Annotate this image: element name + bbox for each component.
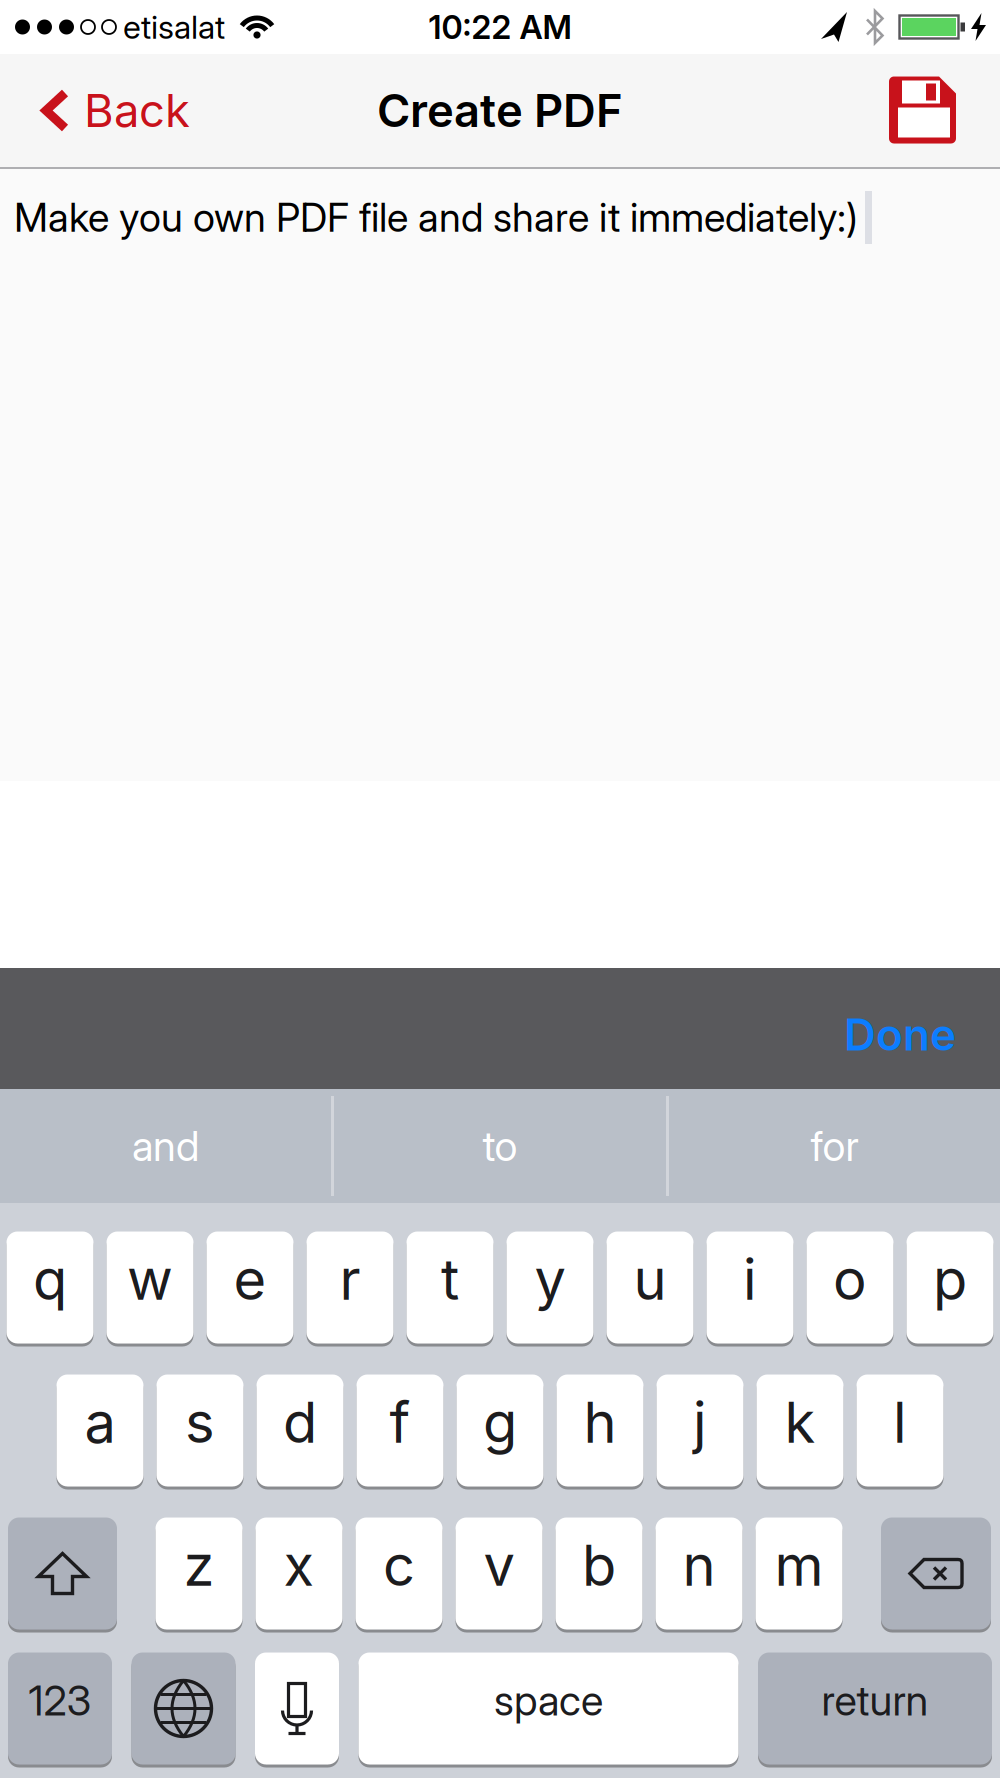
button[interactable]: Shift <box>8 1516 117 1631</box>
button[interactable]: l <box>856 1373 943 1488</box>
button[interactable]: to <box>334 1089 666 1203</box>
button[interactable]: v <box>455 1516 542 1631</box>
button[interactable]: b <box>555 1516 642 1631</box>
button[interactable]: m <box>755 1516 842 1631</box>
button[interactable]: a <box>56 1373 143 1488</box>
button[interactable]: k <box>756 1373 843 1488</box>
button[interactable]: r <box>306 1230 393 1345</box>
button[interactable]: u <box>606 1230 693 1345</box>
button[interactable]: p <box>906 1230 993 1345</box>
staticText: w <box>127 1246 173 1313</box>
staticText: t <box>441 1246 459 1313</box>
staticText: q <box>33 1246 67 1313</box>
staticText: space <box>494 1675 603 1725</box>
staticText: m <box>774 1532 823 1599</box>
button[interactable]: for <box>669 1089 1000 1203</box>
staticText: and <box>132 1121 199 1171</box>
staticText: y <box>534 1246 565 1313</box>
button[interactable]: j <box>656 1373 743 1488</box>
staticText: b <box>582 1532 616 1599</box>
button[interactable]: w <box>106 1230 193 1345</box>
staticText: j <box>693 1389 707 1456</box>
button[interactable]: Next keyboard <box>131 1651 235 1766</box>
staticText: e <box>233 1246 266 1313</box>
button[interactable]: y <box>506 1230 593 1345</box>
staticText: z <box>183 1532 214 1599</box>
button[interactable]: z <box>155 1516 242 1631</box>
staticText: Back <box>84 83 190 138</box>
button[interactable]: d <box>256 1373 343 1488</box>
staticText: k <box>784 1389 815 1456</box>
button[interactable]: Numbers <box>8 1651 112 1766</box>
staticText: etisalat <box>123 8 225 46</box>
staticText: return <box>821 1675 928 1725</box>
button[interactable]: space <box>358 1651 738 1766</box>
staticText: f <box>389 1389 410 1456</box>
button[interactable]: and <box>0 1089 331 1203</box>
button[interactable]: g <box>456 1373 543 1488</box>
staticText: 123 <box>28 1675 91 1725</box>
staticText: u <box>633 1246 666 1313</box>
staticText: r <box>339 1246 360 1313</box>
button[interactable]: e <box>206 1230 293 1345</box>
button[interactable]: Back <box>0 83 190 138</box>
button[interactable]: x <box>255 1516 342 1631</box>
button[interactable]: c <box>355 1516 442 1631</box>
button[interactable]: h <box>556 1373 643 1488</box>
staticText: Create PDF <box>377 83 623 138</box>
button[interactable]: return <box>758 1651 992 1766</box>
staticText: a <box>84 1389 115 1456</box>
button[interactable]: q <box>6 1230 93 1345</box>
staticText: Done <box>844 1008 956 1061</box>
staticText: to <box>482 1121 517 1171</box>
button[interactable]: Done <box>844 1002 1000 1055</box>
staticText: l <box>893 1389 907 1456</box>
button[interactable]: i <box>706 1230 793 1345</box>
staticText: h <box>583 1389 616 1456</box>
staticText: 10:22 AM <box>428 7 571 47</box>
button[interactable]: Save <box>889 76 1000 144</box>
staticText: g <box>483 1389 517 1456</box>
staticText: d <box>283 1389 317 1456</box>
button[interactable]: t <box>406 1230 493 1345</box>
button[interactable]: s <box>156 1373 243 1488</box>
button[interactable]: f <box>356 1373 443 1488</box>
button[interactable]: n <box>655 1516 742 1631</box>
staticText: x <box>283 1532 314 1599</box>
staticText: Make you own PDF file and share it immed… <box>14 194 858 241</box>
staticText: for <box>810 1121 858 1171</box>
staticText: i <box>743 1246 757 1313</box>
staticText: v <box>483 1532 514 1599</box>
staticText: c <box>383 1532 415 1599</box>
staticText: s <box>185 1389 215 1456</box>
staticText: p <box>933 1246 967 1313</box>
button[interactable]: Dictate <box>255 1651 339 1766</box>
staticText: n <box>682 1532 715 1599</box>
button[interactable]: Delete <box>881 1516 991 1631</box>
button[interactable]: o <box>806 1230 893 1345</box>
staticText: o <box>833 1246 867 1313</box>
